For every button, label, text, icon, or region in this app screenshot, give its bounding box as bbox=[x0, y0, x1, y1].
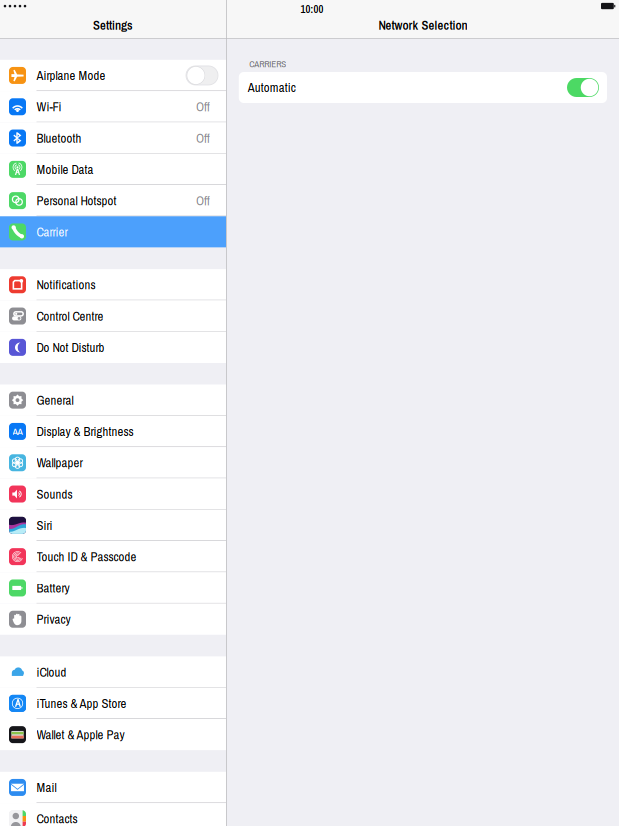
button[interactable]: Wallet & Apple Pay bbox=[0, 719, 226, 750]
staticText: iTunes & App Store bbox=[36, 695, 126, 712]
staticText: Carrier bbox=[36, 223, 67, 240]
button[interactable]: Wi-Fi bbox=[0, 91, 226, 122]
button[interactable]: Notifications bbox=[0, 269, 226, 300]
button[interactable]: Siri bbox=[0, 510, 226, 541]
button[interactable]: Carrier bbox=[0, 216, 226, 248]
button[interactable]: Control Centre bbox=[0, 300, 226, 332]
button[interactable]: Contacts bbox=[0, 803, 226, 826]
staticText: Off bbox=[196, 98, 210, 115]
button[interactable]: iTunes & App Store bbox=[0, 688, 226, 719]
button[interactable]: General bbox=[0, 384, 226, 416]
staticText: Wallet & Apple Pay bbox=[36, 726, 124, 743]
button[interactable]: Mail bbox=[0, 772, 226, 803]
staticText: Off bbox=[196, 129, 210, 147]
staticText: iCloud bbox=[36, 663, 66, 681]
staticText: Battery bbox=[36, 579, 69, 596]
staticText: Wallpaper bbox=[36, 454, 82, 471]
staticText: Mobile Data bbox=[36, 161, 93, 178]
staticText: Automatic bbox=[248, 79, 296, 96]
button[interactable]: Do Not Disturb bbox=[0, 332, 226, 363]
button[interactable]: Privacy bbox=[0, 604, 226, 635]
button[interactable]: Personal Hotspot bbox=[0, 185, 226, 216]
staticText: Control Centre bbox=[36, 307, 103, 325]
button[interactable]: Touch ID & Passcode bbox=[0, 541, 226, 572]
staticText: Off bbox=[196, 192, 210, 209]
staticText: Sounds bbox=[36, 485, 72, 503]
staticText: Siri bbox=[36, 517, 52, 534]
staticText: Mail bbox=[36, 779, 56, 796]
staticText: Do Not Disturb bbox=[36, 339, 104, 356]
button[interactable]: Bluetooth bbox=[0, 122, 226, 154]
staticText: AA bbox=[12, 425, 22, 438]
button[interactable]: AA bbox=[0, 416, 226, 447]
staticText: Wi-Fi bbox=[36, 98, 61, 115]
button[interactable]: Automatic bbox=[239, 72, 607, 103]
button[interactable]: Airplane Mode bbox=[0, 60, 226, 91]
staticText: Contacts bbox=[36, 810, 77, 826]
staticText: 10:00 bbox=[300, 2, 323, 16]
staticText: Airplane Mode bbox=[36, 67, 105, 84]
staticText: Settings bbox=[93, 17, 133, 34]
button[interactable]: Wallpaper bbox=[0, 447, 226, 478]
button[interactable]: Sounds bbox=[0, 478, 226, 510]
staticText: Network Selection bbox=[378, 17, 467, 34]
staticText: CARRIERS bbox=[249, 58, 286, 70]
staticText: Touch ID & Passcode bbox=[36, 548, 136, 565]
staticText: Privacy bbox=[36, 611, 70, 628]
button[interactable]: Mobile Data bbox=[0, 154, 226, 185]
staticText: General bbox=[36, 392, 73, 409]
staticText: Display & Brightness bbox=[36, 423, 133, 440]
staticText: Bluetooth bbox=[36, 129, 81, 147]
button[interactable]: iCloud bbox=[0, 656, 226, 688]
staticText: Personal Hotspot bbox=[36, 192, 116, 209]
staticText: Notifications bbox=[36, 276, 95, 293]
button[interactable]: Battery bbox=[0, 572, 226, 604]
